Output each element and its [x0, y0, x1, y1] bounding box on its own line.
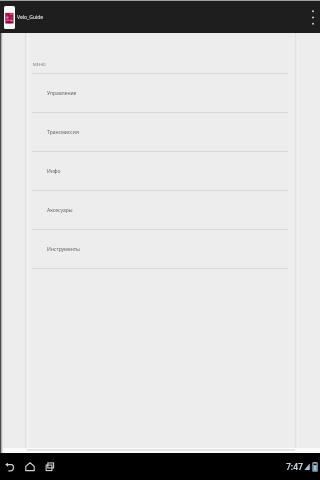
staticText: Управление [47, 90, 77, 97]
staticText: Инструменты [47, 246, 80, 253]
staticText: 7:47 [286, 461, 303, 473]
button[interactable]: Инфо [28, 152, 296, 190]
button[interactable]: Recent apps [40, 453, 60, 480]
button[interactable]: Управление [28, 74, 296, 112]
staticText: Velo_Guide [17, 14, 44, 21]
button[interactable]: Back [0, 453, 20, 480]
button[interactable]: Home [20, 453, 40, 480]
button[interactable]: Аксесуары [28, 191, 296, 229]
staticText: Аксесуары [47, 207, 73, 214]
staticText: Инфо [47, 168, 61, 175]
staticText: МЕНЮ [33, 62, 46, 67]
button[interactable]: Трансмиссия [28, 113, 296, 151]
button[interactable]: Инструменты [28, 230, 296, 268]
staticText: Трансмиссия [47, 129, 79, 136]
button[interactable]: More options [306, 1, 319, 33]
